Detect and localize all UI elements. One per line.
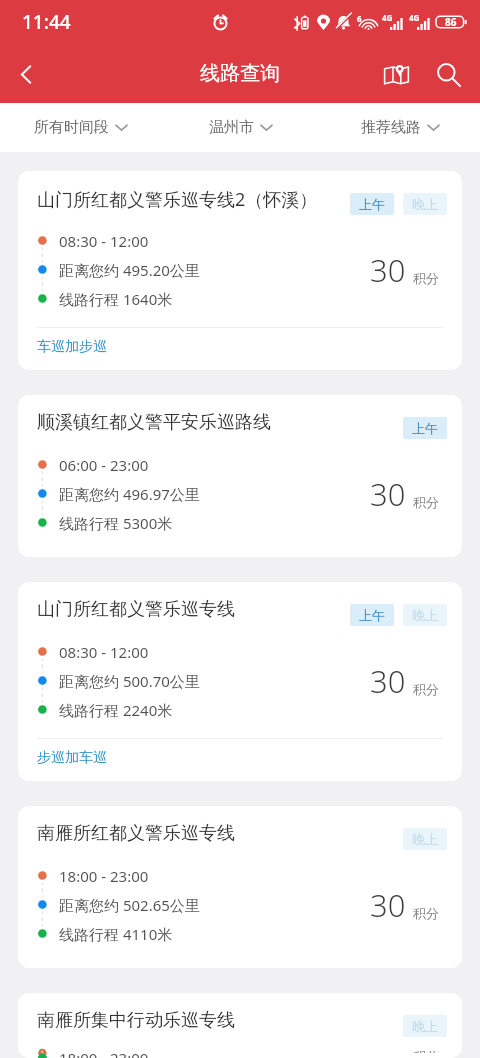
staticText: 上午 [412, 420, 438, 436]
staticText: 步巡加车巡 [37, 749, 107, 767]
staticText: 山门所红都义警乐巡专线2（怀溪） [37, 187, 318, 212]
staticText: 南雁所红都义警乐巡专线 [37, 822, 235, 845]
staticText: 06:00 - 23:00 [59, 455, 149, 475]
staticText: 18:00 - 23:00 [59, 866, 149, 886]
staticText: 积分 [413, 494, 439, 510]
staticText: 线路行程 1640米 [59, 289, 173, 309]
button[interactable]: Back [0, 48, 52, 100]
staticText: 晚上 [412, 1018, 438, 1034]
button[interactable]: 山门所红都义警乐巡专线 [18, 582, 462, 781]
button[interactable]: 推荐线路 [320, 103, 480, 152]
staticText: 线路行程 4110米 [59, 924, 173, 944]
staticText: 08:30 - 12:00 [59, 231, 149, 251]
staticText: 南雁所集中行动乐巡专线 [37, 1009, 235, 1032]
button[interactable]: Search [422, 48, 474, 100]
staticText: 线路行程 5300米 [59, 513, 173, 533]
staticText: 积分 [413, 270, 439, 286]
staticText: 积分 [413, 681, 439, 697]
button[interactable]: 晚上 [403, 1015, 447, 1037]
staticText: 晚上 [412, 607, 438, 623]
staticText: 上午 [359, 196, 385, 212]
staticText: 积分 [413, 905, 439, 921]
staticText: 山门所红都义警乐巡专线 [37, 598, 235, 621]
staticText: 4G [409, 12, 420, 23]
staticText: 6 [357, 13, 362, 24]
staticText: 推荐线路 [361, 118, 421, 137]
button[interactable]: 上午 [350, 604, 394, 626]
button[interactable]: 车巡加步巡 [37, 338, 107, 356]
staticText: 晚上 [412, 831, 438, 847]
staticText: 30 [370, 660, 406, 702]
staticText: 距离您约 496.97公里 [59, 484, 200, 504]
staticText: 30 [370, 473, 406, 515]
button[interactable]: 南雁所集中行动乐巡专线 [18, 993, 462, 1058]
button[interactable]: Map [370, 48, 422, 100]
button[interactable]: 温州市 [160, 103, 320, 152]
staticText: 上午 [359, 607, 385, 623]
button[interactable]: 晚上 [403, 828, 447, 850]
staticText: 86 [445, 15, 457, 29]
staticText: 距离您约 500.70公里 [59, 671, 200, 691]
button[interactable]: 上午 [403, 417, 447, 439]
staticText: 线路查询 [200, 61, 280, 86]
button[interactable]: 所有时间段 [0, 103, 160, 152]
staticText: 18:00 - 23:00 [59, 1048, 149, 1058]
button[interactable]: 顺溪镇红都义警平安乐巡路线 [18, 395, 462, 557]
staticText: 11:44 [22, 9, 71, 35]
button[interactable]: 南雁所红都义警乐巡专线 [18, 806, 462, 968]
staticText: 晚上 [412, 196, 438, 212]
staticText: 顺溪镇红都义警平安乐巡路线 [37, 411, 271, 434]
staticText: 30 [370, 249, 406, 291]
button[interactable]: 山门所红都义警乐巡专线2（怀溪） [18, 171, 462, 370]
staticText: 30 [370, 884, 406, 926]
staticText: 车巡加步巡 [37, 338, 107, 356]
staticText: 积分 [413, 1048, 439, 1053]
staticText: 温州市 [209, 118, 254, 137]
button[interactable]: 晚上 [403, 193, 447, 215]
staticText: 距离您约 495.20公里 [59, 260, 200, 280]
staticText: 08:30 - 12:00 [59, 642, 149, 662]
button[interactable]: 步巡加车巡 [37, 749, 107, 767]
staticText: 4G [382, 12, 393, 23]
button[interactable]: 晚上 [403, 604, 447, 626]
button[interactable]: 上午 [350, 193, 394, 215]
staticText: 距离您约 502.65公里 [59, 895, 200, 915]
staticText: 所有时间段 [34, 118, 109, 137]
staticText: 线路行程 2240米 [59, 700, 173, 720]
